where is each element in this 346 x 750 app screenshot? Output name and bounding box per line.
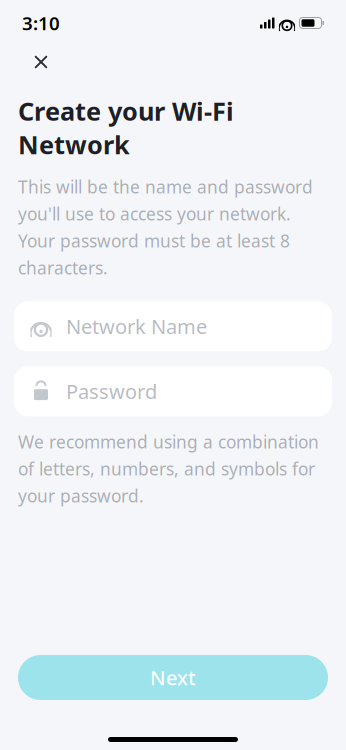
button[interactable]: Close bbox=[19, 40, 63, 84]
staticText: Next bbox=[150, 664, 196, 691]
staticText: We recommend using a combination of lett… bbox=[18, 430, 319, 507]
button[interactable]: Next bbox=[18, 655, 328, 700]
staticText: 3:10 bbox=[22, 11, 60, 35]
button[interactable]: Network Name bbox=[14, 301, 332, 351]
staticText: Create your Wi-Fi Network bbox=[18, 94, 234, 161]
staticText: Network Name bbox=[66, 313, 207, 340]
staticText: This will be the name and password you'l… bbox=[18, 175, 313, 279]
button[interactable]: Password bbox=[14, 366, 332, 416]
staticText: Password bbox=[66, 378, 157, 405]
